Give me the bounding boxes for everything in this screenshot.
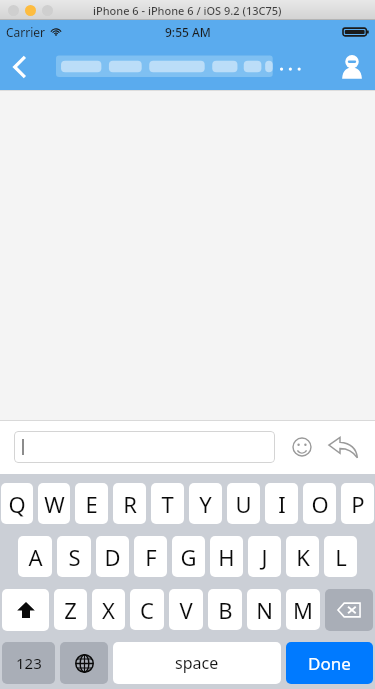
staticText: X xyxy=(102,595,115,625)
staticText: Z xyxy=(64,595,77,625)
staticText: J xyxy=(261,542,268,572)
staticText: 123 xyxy=(16,653,42,673)
button[interactable]: T xyxy=(151,483,184,525)
staticText: O xyxy=(311,489,329,519)
button[interactable]: R xyxy=(113,483,146,525)
button[interactable]: Shift xyxy=(2,589,49,631)
button[interactable]: K xyxy=(286,536,319,578)
button[interactable]: S xyxy=(57,536,91,578)
staticText: Q xyxy=(8,489,26,519)
staticText: R xyxy=(123,489,137,519)
button[interactable]: J xyxy=(248,536,281,578)
button[interactable]: F xyxy=(134,536,167,578)
staticText: Y xyxy=(199,489,212,519)
staticText: space xyxy=(175,652,219,674)
staticText: I xyxy=(278,489,286,519)
button[interactable]: Contact info xyxy=(329,44,375,90)
button[interactable]: C xyxy=(130,589,164,631)
staticText: A xyxy=(28,542,43,572)
staticText: B xyxy=(218,595,233,625)
staticText: E xyxy=(85,489,98,519)
button[interactable]: Q xyxy=(1,483,33,525)
staticText: Carrier xyxy=(6,24,46,40)
staticText: C xyxy=(140,595,154,625)
button[interactable]: Done xyxy=(286,642,373,684)
button[interactable]: Send xyxy=(325,429,361,465)
staticText: P xyxy=(351,489,365,519)
button[interactable]: O xyxy=(303,483,336,525)
button[interactable]: Change keyboard xyxy=(60,642,108,684)
button[interactable]: Z xyxy=(54,589,87,631)
staticText: S xyxy=(68,542,81,572)
button[interactable]: D xyxy=(96,536,129,578)
button[interactable]: I xyxy=(265,483,298,525)
button[interactable]: X xyxy=(92,589,125,631)
staticText: U xyxy=(235,489,252,519)
button[interactable] xyxy=(14,431,275,463)
button[interactable] xyxy=(56,44,308,90)
staticText: K xyxy=(296,542,310,572)
button[interactable]: 123 xyxy=(2,642,55,684)
staticText: M xyxy=(293,595,313,625)
button[interactable]: Back xyxy=(0,44,40,90)
button[interactable]: H xyxy=(210,536,243,578)
button[interactable]: space xyxy=(113,642,281,684)
button[interactable]: U xyxy=(227,483,260,525)
staticText: H xyxy=(218,542,235,572)
button[interactable]: N xyxy=(247,589,281,631)
staticText: Done xyxy=(308,652,351,675)
staticText: 9:55 AM xyxy=(165,24,211,40)
staticText: D xyxy=(104,542,121,572)
staticText: N xyxy=(256,595,273,625)
button[interactable]: G xyxy=(172,536,205,578)
button[interactable]: M xyxy=(286,589,320,631)
button[interactable]: Y xyxy=(189,483,222,525)
staticText: T xyxy=(161,489,174,519)
button[interactable]: W xyxy=(38,483,70,525)
button[interactable]: L xyxy=(324,536,357,578)
button[interactable]: E xyxy=(75,483,108,525)
staticText: G xyxy=(180,542,197,572)
button[interactable]: Backspace xyxy=(325,589,373,631)
button[interactable]: V xyxy=(169,589,203,631)
staticText: F xyxy=(145,542,157,572)
staticText: L xyxy=(335,542,347,572)
staticText: W xyxy=(44,489,65,519)
button[interactable]: B xyxy=(208,589,242,631)
staticText: V xyxy=(179,595,193,625)
button[interactable]: Emoji xyxy=(287,432,317,462)
staticText: iPhone 6 - iPhone 6 / iOS 9.2 (13C75) xyxy=(93,3,282,18)
button[interactable]: A xyxy=(18,536,52,578)
button[interactable]: P xyxy=(341,483,374,525)
